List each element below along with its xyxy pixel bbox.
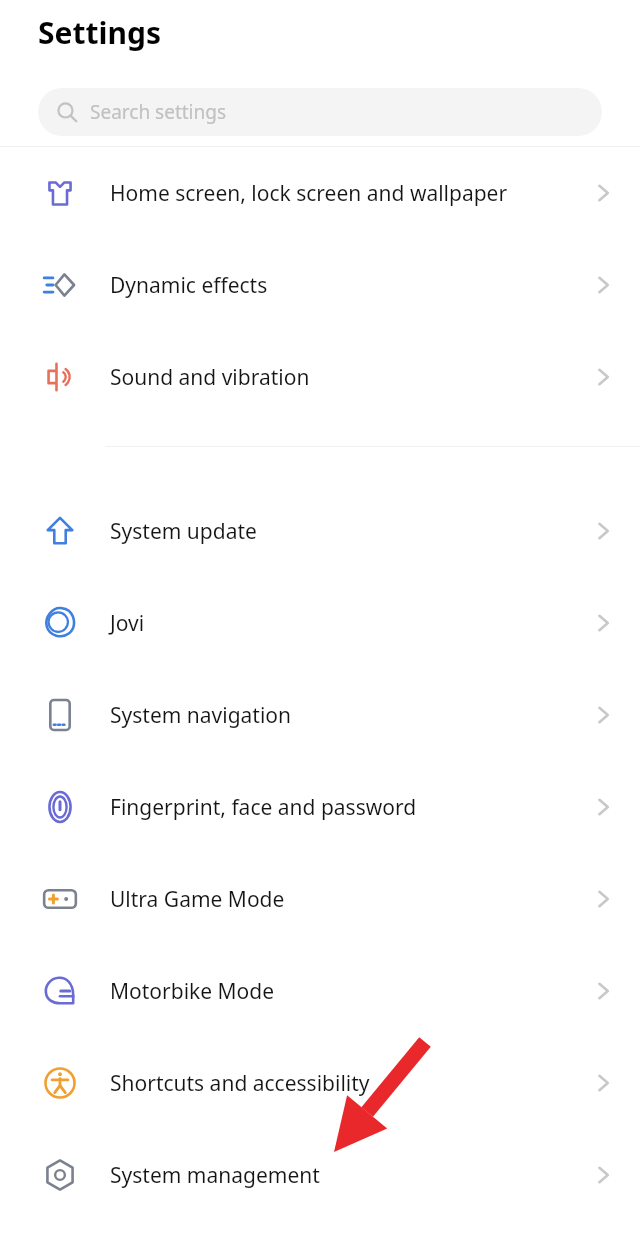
staticText: System navigation — [110, 701, 572, 730]
button[interactable]: Ultra Game Mode — [0, 853, 640, 945]
button[interactable]: System navigation — [0, 669, 640, 761]
button[interactable]: Motorbike Mode — [0, 945, 640, 1037]
staticText: Home screen, lock screen and wallpaper — [110, 179, 572, 208]
button[interactable]: Search settings — [38, 88, 602, 136]
staticText: Sound and vibration — [110, 363, 572, 392]
button[interactable]: Jovi — [0, 577, 640, 669]
staticText: Dynamic effects — [110, 271, 572, 300]
button[interactable]: Shortcuts and accessibility — [0, 1037, 640, 1129]
button[interactable]: Dynamic effects — [0, 239, 640, 331]
staticText: Jovi — [110, 609, 572, 638]
staticText: Ultra Game Mode — [110, 885, 572, 914]
button[interactable]: System update — [0, 485, 640, 577]
staticText: Search settings — [90, 99, 227, 125]
staticText: Shortcuts and accessibility — [110, 1069, 572, 1098]
staticText: System management — [110, 1161, 572, 1190]
staticText: Settings — [38, 12, 161, 53]
staticText: Motorbike Mode — [110, 977, 572, 1006]
button[interactable]: System management — [0, 1129, 640, 1221]
button[interactable]: Home screen, lock screen and wallpaper — [0, 147, 640, 239]
staticText: Fingerprint, face and password — [110, 793, 572, 822]
button[interactable]: Fingerprint, face and password — [0, 761, 640, 853]
staticText: System update — [110, 517, 572, 546]
button[interactable]: Sound and vibration — [0, 331, 640, 423]
